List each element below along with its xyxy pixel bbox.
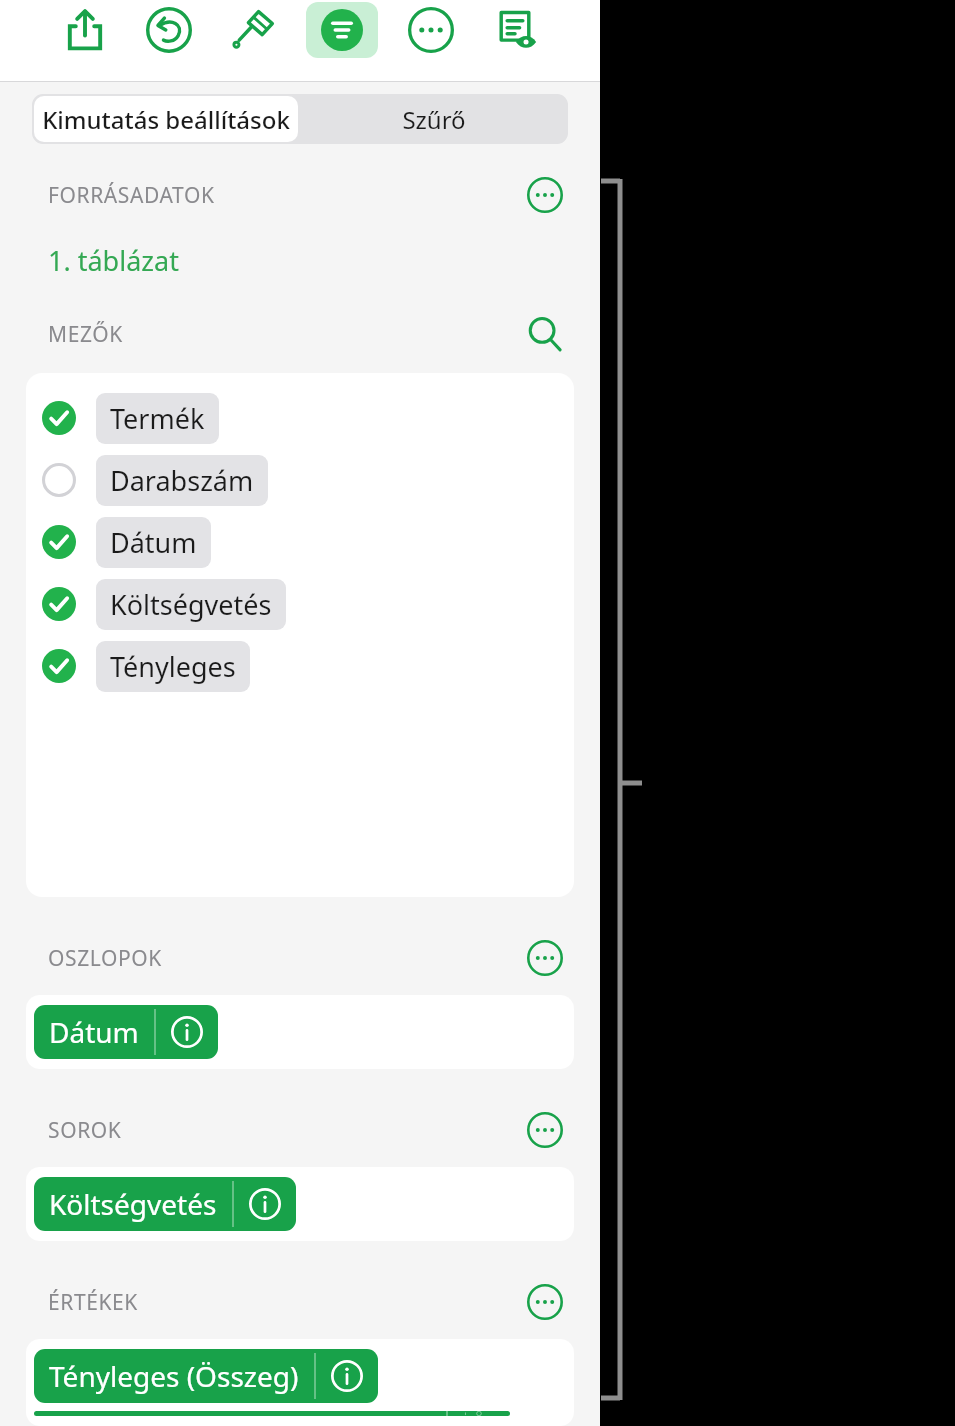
button[interactable]: Termék (42, 387, 574, 449)
staticText: FORRÁSADATOK (48, 181, 215, 210)
button[interactable]: More options (520, 170, 570, 220)
button[interactable]: Tényleges (Összeg) (34, 1349, 378, 1403)
staticText: Kimutatás beállítások (42, 103, 290, 136)
button[interactable]: Format brush (222, 0, 284, 60)
button[interactable]: Search (520, 309, 570, 359)
button[interactable]: Dátum (34, 1005, 218, 1059)
staticText: Költségvetés (49, 1185, 217, 1223)
button[interactable]: More options (520, 1105, 570, 1155)
button[interactable]: Kimutatás beállítások (34, 96, 298, 142)
staticText: Tényleges (110, 648, 236, 685)
button[interactable]: Undo (138, 0, 200, 60)
staticText: Termék (110, 400, 205, 437)
button[interactable]: More options (520, 933, 570, 983)
staticText: Tényleges (Összeg) (49, 1357, 299, 1395)
button[interactable]: Share (54, 0, 116, 60)
button[interactable]: 1. táblázat (48, 242, 179, 279)
button[interactable]: Termék (Összes darabszáma) (34, 1411, 510, 1416)
staticText: Dátum (110, 524, 197, 561)
staticText: MEZŐK (48, 320, 123, 349)
staticText: Darabszám (110, 462, 254, 499)
staticText: SOROK (48, 1116, 122, 1145)
button[interactable]: More options (520, 1277, 570, 1327)
button[interactable]: Info (448, 1411, 510, 1416)
button[interactable]: Tényleges (42, 635, 574, 697)
button[interactable]: Info (156, 1009, 218, 1055)
staticText: OSZLOPOK (48, 944, 162, 973)
button[interactable]: Költségvetés (34, 1177, 296, 1231)
button[interactable]: Info (316, 1353, 378, 1399)
staticText: Költségvetés (110, 586, 272, 623)
button[interactable]: Info (234, 1181, 296, 1227)
staticText: Szűrő (402, 103, 466, 136)
button[interactable]: Document options (484, 0, 546, 60)
staticText: Dátum (49, 1013, 139, 1051)
staticText: ÉRTÉKEK (48, 1288, 138, 1317)
button[interactable]: Organize (306, 2, 378, 58)
button[interactable]: More (400, 0, 462, 60)
button[interactable]: Darabszám (42, 449, 574, 511)
button[interactable]: Dátum (42, 511, 574, 573)
button[interactable]: Szűrő (300, 94, 568, 144)
button[interactable]: Költségvetés (42, 573, 574, 635)
